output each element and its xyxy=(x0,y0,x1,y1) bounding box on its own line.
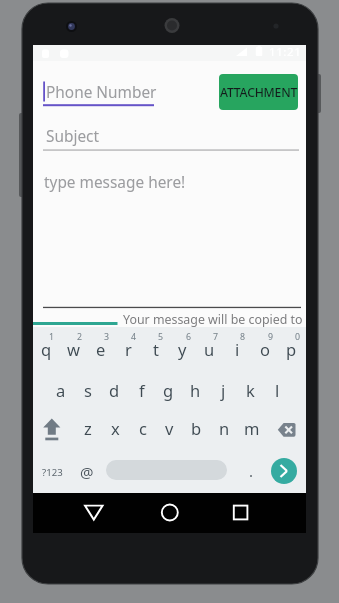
button[interactable]: s xyxy=(74,371,101,409)
staticText: 0 xyxy=(295,331,301,343)
staticText: 1 xyxy=(49,331,55,343)
button[interactable]: w xyxy=(60,329,87,369)
staticText: h xyxy=(190,379,201,401)
staticText: 5 xyxy=(158,331,164,343)
staticText: c xyxy=(139,417,147,439)
button[interactable] xyxy=(43,70,183,110)
button[interactable]: r xyxy=(115,329,142,369)
button[interactable]: q xyxy=(33,329,60,369)
button[interactable]: j xyxy=(210,371,237,409)
staticText: t xyxy=(153,338,159,360)
staticText: type message here! xyxy=(44,172,186,193)
button[interactable]: x xyxy=(102,409,129,447)
staticText: u xyxy=(204,338,215,360)
button[interactable]: z xyxy=(74,409,101,447)
staticText: w xyxy=(67,338,80,360)
button[interactable]: b xyxy=(183,409,210,447)
staticText: k xyxy=(246,379,255,401)
button[interactable]: u xyxy=(196,329,223,369)
button[interactable] xyxy=(106,460,227,480)
staticText: f xyxy=(139,379,145,401)
button[interactable] xyxy=(272,415,302,445)
staticText: 2 xyxy=(77,331,83,343)
button[interactable]: a xyxy=(47,371,74,409)
button[interactable]: e xyxy=(87,329,114,369)
staticText: 7 xyxy=(213,331,219,343)
button[interactable]: g xyxy=(155,371,182,409)
staticText: 9 xyxy=(268,331,274,343)
button[interactable]: ATTACHMENT xyxy=(219,74,298,110)
staticText: l xyxy=(275,379,280,401)
staticText: Your message will be copied to xyxy=(123,311,303,328)
button[interactable]: l xyxy=(264,371,291,409)
button[interactable]: n xyxy=(211,409,238,447)
button[interactable]: t xyxy=(142,329,169,369)
button[interactable] xyxy=(226,498,256,528)
staticText: ATTACHMENT xyxy=(220,84,298,101)
staticText: i xyxy=(235,338,240,360)
button[interactable]: @ xyxy=(0,458,197,486)
staticText: 11:21 xyxy=(269,44,302,60)
button[interactable]: v xyxy=(156,409,183,447)
staticText: 6 xyxy=(186,331,192,343)
button[interactable]: c xyxy=(129,409,156,447)
staticText: m xyxy=(244,417,260,439)
button[interactable] xyxy=(155,498,185,528)
button[interactable]: m xyxy=(238,409,265,447)
staticText: . xyxy=(249,461,254,481)
staticText: d xyxy=(109,379,120,401)
staticText: x xyxy=(111,417,120,439)
button[interactable]: f xyxy=(128,371,155,409)
button[interactable]: i xyxy=(224,329,251,369)
staticText: v xyxy=(165,417,174,439)
staticText: j xyxy=(221,379,226,401)
button[interactable] xyxy=(43,118,299,152)
staticText: o xyxy=(260,338,270,360)
staticText: 3 xyxy=(104,331,110,343)
staticText: 4 xyxy=(131,331,137,343)
staticText: Subject xyxy=(46,126,100,147)
button[interactable]: p xyxy=(278,329,305,369)
button[interactable]: . xyxy=(141,457,339,485)
staticText: @ xyxy=(80,462,94,482)
button[interactable]: d xyxy=(101,371,128,409)
button[interactable] xyxy=(271,458,297,484)
staticText: 8 xyxy=(240,331,246,343)
staticText: q xyxy=(41,338,52,360)
staticText: z xyxy=(84,417,92,439)
button[interactable]: k xyxy=(237,371,264,409)
staticText: y xyxy=(178,338,187,360)
button[interactable]: h xyxy=(182,371,209,409)
staticText: a xyxy=(56,379,66,401)
staticText: n xyxy=(219,417,230,439)
staticText: Phone Number xyxy=(46,82,157,103)
staticText: ?123 xyxy=(42,466,63,479)
staticText: e xyxy=(96,338,106,360)
button[interactable]: y xyxy=(169,329,196,369)
button[interactable] xyxy=(37,411,67,447)
staticText: b xyxy=(191,417,202,439)
staticText: p xyxy=(286,338,297,360)
staticText: s xyxy=(84,379,92,401)
staticText: g xyxy=(163,379,174,401)
button[interactable] xyxy=(79,498,109,528)
staticText: r xyxy=(125,338,132,360)
button[interactable] xyxy=(43,160,299,308)
button[interactable]: o xyxy=(251,329,278,369)
button[interactable]: ?123 xyxy=(0,458,162,486)
